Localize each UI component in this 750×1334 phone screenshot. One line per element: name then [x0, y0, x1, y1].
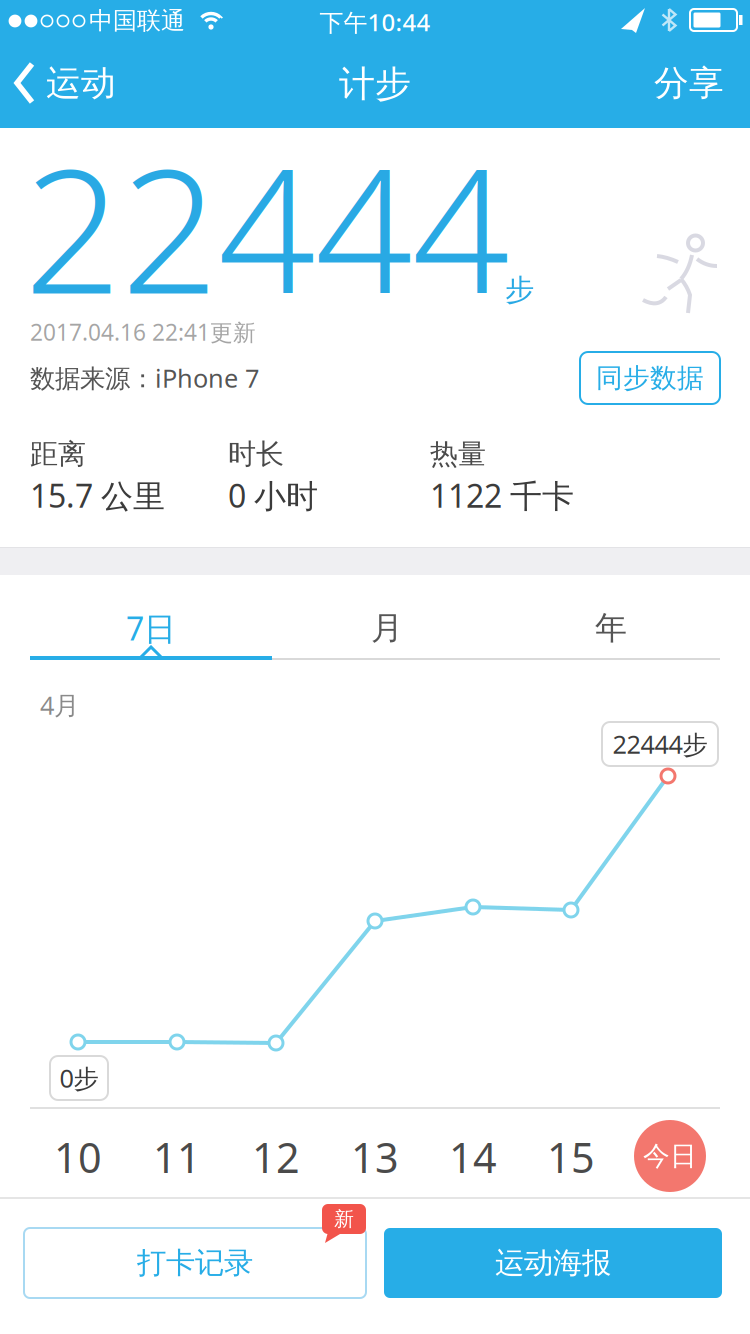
staticText: 距离	[30, 437, 86, 471]
button[interactable]: 今日	[634, 1120, 706, 1192]
button[interactable]: 月	[272, 600, 502, 656]
staticText: 15	[547, 1130, 595, 1184]
button[interactable]: 分享	[654, 62, 724, 105]
staticText: 2017.04.16 22:41更新	[30, 317, 256, 347]
staticText: 10	[54, 1130, 102, 1184]
staticText: 运动海报	[495, 1245, 611, 1281]
staticText: 今日	[643, 1140, 697, 1172]
staticText: 打卡记录	[137, 1245, 253, 1281]
staticText: 4月	[40, 688, 79, 722]
staticText: 数据来源：iPhone 7	[30, 361, 259, 395]
staticText: 中国联通	[89, 6, 185, 35]
staticText: 11	[153, 1130, 201, 1184]
staticText: 15.7 公里	[30, 474, 165, 516]
button[interactable]: 同步数据	[580, 352, 720, 404]
staticText: 同步数据	[596, 362, 704, 394]
staticText: 14	[449, 1130, 497, 1184]
staticText: 22444步	[612, 727, 707, 761]
staticText: 月	[371, 608, 403, 648]
staticText: 0 小时	[228, 474, 318, 516]
staticText: 运动	[46, 62, 116, 105]
button[interactable]: 打卡记录	[24, 1228, 366, 1298]
button[interactable]: 运动海报	[384, 1228, 722, 1298]
staticText: 7日	[126, 607, 176, 649]
staticText: 时长	[228, 437, 284, 471]
staticText: 下午10:44	[319, 6, 430, 38]
staticText: 新	[334, 1207, 354, 1231]
staticText: 22444	[24, 114, 509, 341]
button[interactable]: 运动	[14, 58, 129, 108]
staticText: 分享	[654, 62, 724, 105]
button[interactable]: 年	[502, 600, 720, 656]
staticText: 计步	[339, 62, 411, 106]
staticText: 1122 千卡	[430, 474, 574, 516]
button[interactable]: 7日	[30, 600, 272, 656]
staticText: 年	[595, 608, 627, 648]
staticText: 步	[505, 272, 534, 308]
staticText: 0步	[59, 1061, 98, 1095]
staticText: 热量	[430, 437, 486, 471]
staticText: 13	[351, 1130, 399, 1184]
staticText: 12	[252, 1130, 300, 1184]
